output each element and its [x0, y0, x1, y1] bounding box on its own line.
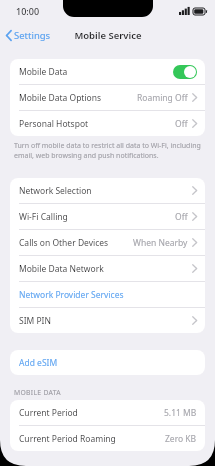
staticText: Network Provider Services — [19, 289, 124, 301]
staticText: SIM PIN — [19, 315, 51, 327]
button[interactable]: Network Provider Services — [10, 282, 205, 307]
staticText: Wi-Fi Calling — [19, 211, 68, 223]
staticText: Mobile Data Options — [19, 92, 102, 104]
button[interactable]: Current Period — [10, 400, 205, 425]
button[interactable]: SIM PIN — [10, 308, 205, 333]
staticText: Zero KB — [165, 433, 197, 445]
staticText: When Nearby — [133, 237, 188, 249]
button[interactable]: Calls on Other Devices — [10, 230, 205, 255]
button[interactable]: Wi-Fi Calling — [10, 204, 205, 229]
staticText: Current Period — [19, 407, 78, 419]
staticText: Personal Hotspot — [19, 118, 89, 130]
staticText: Calls on Other Devices — [19, 237, 109, 249]
button[interactable]: Mobile Data toggle, on — [173, 65, 197, 79]
button[interactable]: Mobile Data Network — [10, 256, 205, 281]
staticText: 5.11 MB — [164, 407, 197, 419]
staticText: Network Selection — [19, 185, 92, 197]
staticText: Roaming Off — [137, 92, 188, 104]
staticText: Settings — [14, 29, 51, 42]
staticText: 10:00 — [16, 5, 40, 17]
staticText: Turn off mobile data to restrict all dat… — [14, 141, 201, 161]
button[interactable]: Current Period Roaming — [10, 426, 205, 451]
staticText: Off — [175, 118, 188, 130]
staticText: Off — [175, 211, 188, 223]
button[interactable]: Mobile Data — [10, 59, 205, 84]
button[interactable]: Settings — [0, 26, 57, 45]
button[interactable]: Mobile Data Options — [10, 85, 205, 110]
button[interactable]: Network Selection — [10, 178, 205, 203]
staticText: Mobile Service — [74, 29, 142, 42]
staticText: Mobile Data — [19, 66, 68, 78]
button[interactable]: Personal Hotspot — [10, 111, 205, 136]
staticText: Current Period Roaming — [19, 433, 116, 445]
button[interactable]: Add eSIM — [10, 350, 205, 375]
staticText: MOBILE DATA — [14, 388, 61, 397]
staticText: Add eSIM — [19, 357, 58, 369]
staticText: Mobile Data Network — [19, 263, 104, 275]
